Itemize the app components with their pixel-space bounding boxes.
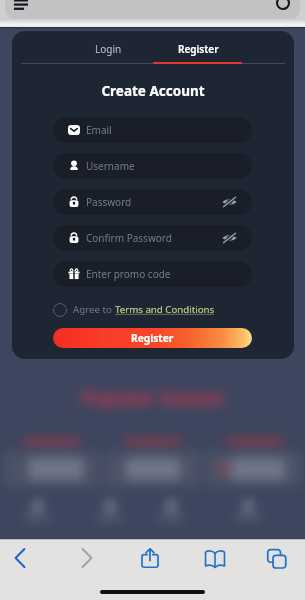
staticText: Login xyxy=(95,42,122,56)
staticText: Password xyxy=(86,195,132,209)
staticText: Register xyxy=(178,42,219,56)
button[interactable]: Login xyxy=(63,36,153,62)
button[interactable]: Reload xyxy=(271,0,295,18)
button[interactable]: Bookmarks xyxy=(203,547,227,571)
button[interactable]: Agree to xyxy=(53,302,252,317)
button[interactable]: Username xyxy=(53,153,252,179)
staticText: Email xyxy=(86,123,112,137)
button[interactable]: Register xyxy=(53,328,252,348)
button[interactable]: Email xyxy=(53,117,252,143)
button[interactable]: Terms and Conditions xyxy=(115,303,215,316)
button[interactable]: Register xyxy=(153,36,243,62)
staticText: Username xyxy=(86,159,135,173)
button[interactable]: Confirm Password xyxy=(53,225,252,251)
button[interactable]: Reader view xyxy=(10,0,32,18)
staticText: Register xyxy=(131,331,174,345)
button[interactable]: Password xyxy=(53,189,252,215)
staticText: Popular Games xyxy=(0,385,305,411)
staticText: Confirm Password xyxy=(86,231,172,245)
staticText: Create Account xyxy=(12,82,294,100)
button[interactable]: Share xyxy=(138,546,162,570)
button[interactable]: Back xyxy=(8,546,32,570)
button[interactable]: Forward xyxy=(75,546,99,570)
staticText: Enter promo code xyxy=(86,267,171,281)
button[interactable] xyxy=(5,0,300,19)
staticText: Agree to xyxy=(73,303,115,316)
button[interactable]: Enter promo code xyxy=(53,261,252,287)
button[interactable]: Tabs xyxy=(265,547,289,571)
